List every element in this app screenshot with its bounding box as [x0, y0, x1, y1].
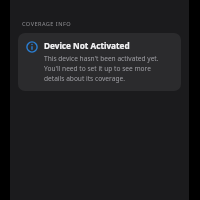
staticText: This device hasn't been activated yet. Y…	[44, 54, 172, 82]
staticText: COVERAGE INFO	[22, 20, 72, 28]
button[interactable]: Information	[18, 33, 181, 91]
staticText: Device Not Activated	[44, 40, 130, 51]
other: Information	[26, 41, 38, 53]
